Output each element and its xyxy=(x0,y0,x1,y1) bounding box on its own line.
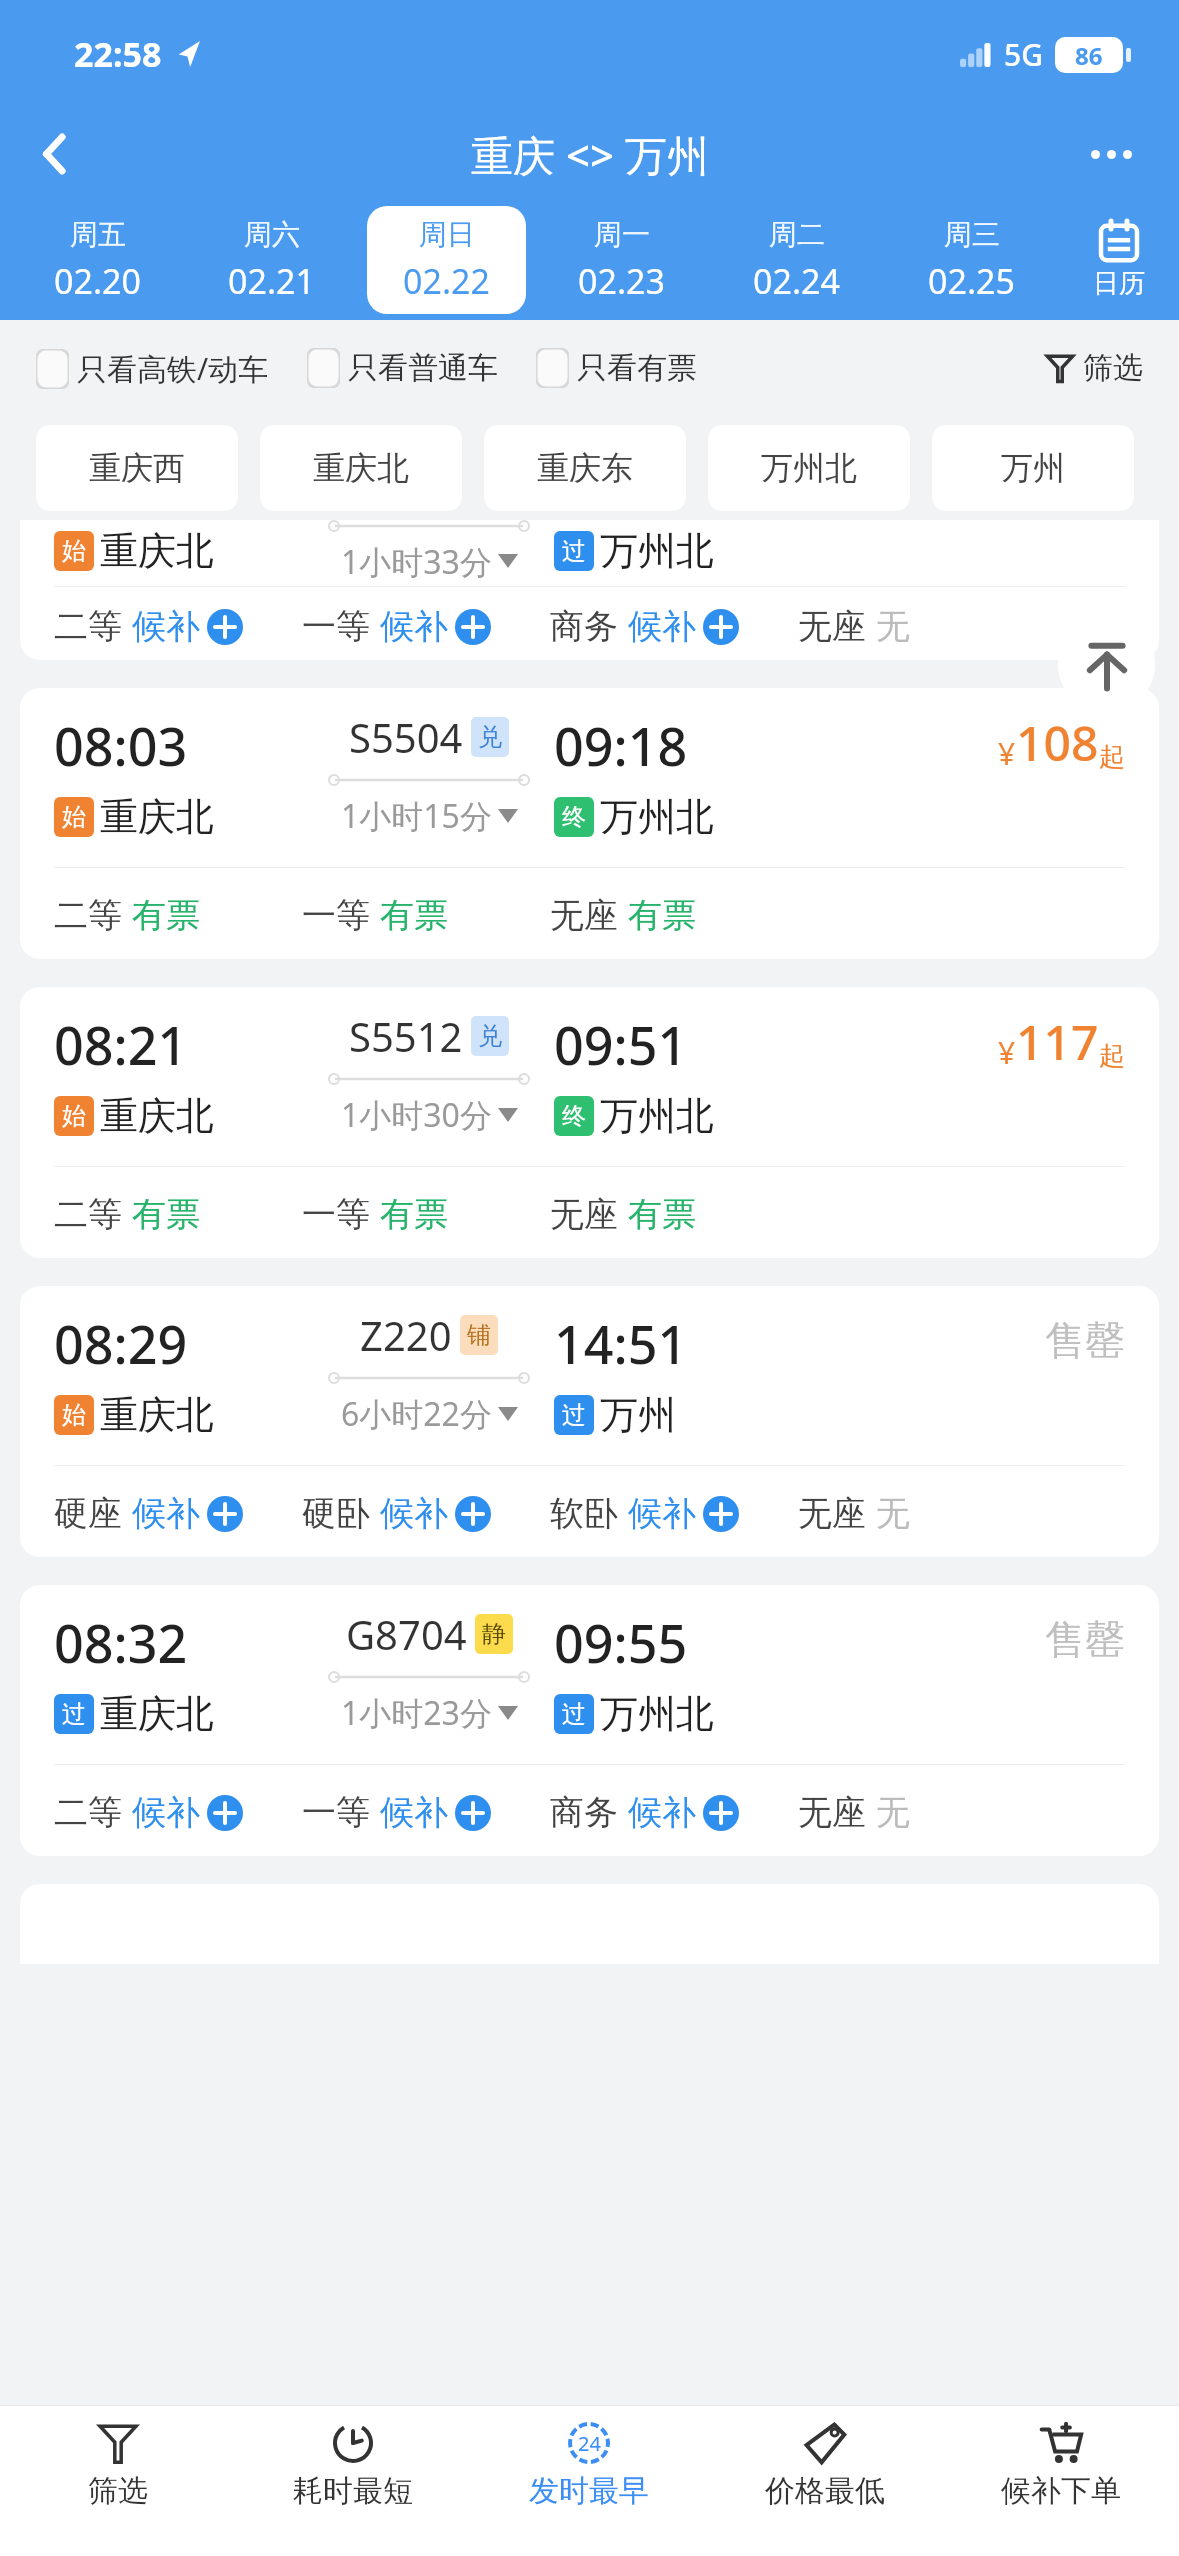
button[interactable]: 商务 xyxy=(550,1791,798,1834)
button[interactable]: 硬座 xyxy=(54,1492,302,1535)
staticText: 一等 xyxy=(302,894,370,937)
button[interactable]: 日历 xyxy=(1059,200,1179,320)
button[interactable]: 08:32 xyxy=(20,1585,1159,1856)
staticText: 重庆北 xyxy=(100,527,214,575)
button[interactable]: 软卧 xyxy=(550,1492,798,1535)
staticText: 无 xyxy=(876,1791,910,1834)
staticText: 只看有票 xyxy=(577,349,697,387)
staticText: 24 xyxy=(578,2430,601,2457)
staticText: 过 xyxy=(562,1400,586,1430)
staticText: 始 xyxy=(62,802,86,832)
staticText: 候补 xyxy=(628,1791,696,1834)
staticText: 无座 xyxy=(550,894,618,937)
staticText: 重庆东 xyxy=(537,448,633,488)
button[interactable]: 一等 xyxy=(302,605,550,648)
button[interactable]: 无座 xyxy=(798,1492,1046,1535)
staticText: 过 xyxy=(62,1699,86,1729)
button[interactable]: 周六 xyxy=(192,206,351,314)
staticText: 09:18 xyxy=(554,710,688,781)
staticText: 5G xyxy=(1004,34,1043,75)
button[interactable]: 始 xyxy=(20,520,1159,660)
staticText: 无座 xyxy=(550,1193,618,1236)
button[interactable]: 08:03 xyxy=(20,688,1159,959)
staticText: 过 xyxy=(562,1699,586,1729)
button[interactable]: 无座 xyxy=(550,1193,798,1236)
button[interactable]: 耗时最短 xyxy=(235,2406,471,2556)
button[interactable]: 08:29 xyxy=(20,1286,1159,1557)
button[interactable]: 价格最低 xyxy=(707,2406,943,2556)
staticText: 万州北 xyxy=(600,1690,714,1738)
staticText: 硬卧 xyxy=(302,1492,370,1535)
button[interactable]: 周五 xyxy=(18,206,176,314)
staticText: 万州 xyxy=(1001,448,1065,488)
button[interactable]: Back to top xyxy=(1058,616,1155,713)
staticText: 重庆北 xyxy=(313,448,409,488)
staticText: 周三 xyxy=(944,217,1000,252)
button[interactable]: 周三 xyxy=(892,206,1051,314)
staticText: 只看普通车 xyxy=(348,349,498,387)
staticText: 22:58 xyxy=(74,31,162,77)
staticText: 09:55 xyxy=(554,1607,688,1678)
staticText: 无座 xyxy=(798,605,866,648)
staticText: 6小时22分 xyxy=(341,1392,492,1436)
button[interactable]: 万州 xyxy=(932,425,1134,511)
staticText: 二等 xyxy=(54,1193,122,1236)
staticText: 万州 xyxy=(600,1391,676,1439)
button[interactable]: 无座 xyxy=(798,1791,1046,1834)
button[interactable]: 重庆北 xyxy=(260,425,462,511)
staticText: 周一 xyxy=(594,217,650,252)
staticText: 始 xyxy=(62,536,86,566)
staticText: 一等 xyxy=(302,1791,370,1834)
staticText: 价格最低 xyxy=(765,2472,885,2510)
button[interactable]: 周一 xyxy=(542,206,701,314)
staticText: 1小时30分 xyxy=(341,1093,492,1137)
button[interactable]: 24 xyxy=(471,2406,707,2556)
button[interactable]: 只看有票 xyxy=(536,342,697,394)
button[interactable]: 一等 xyxy=(302,894,550,937)
staticText: 无 xyxy=(876,1492,910,1535)
button[interactable]: 二等 xyxy=(54,1791,302,1834)
button[interactable]: More options xyxy=(1075,118,1147,190)
staticText: 08:03 xyxy=(54,710,188,781)
button[interactable]: 商务 xyxy=(550,605,798,648)
staticText: 14:51 xyxy=(554,1308,688,1379)
button[interactable]: 二等 xyxy=(54,894,302,937)
staticText: 始 xyxy=(62,1101,86,1131)
staticText: 过 xyxy=(562,536,586,566)
staticText: 候补 xyxy=(132,1492,200,1535)
button[interactable]: 重庆西 xyxy=(36,425,238,511)
staticText: 有票 xyxy=(628,894,696,937)
button[interactable]: 周二 xyxy=(717,206,876,314)
button[interactable]: 周日 xyxy=(367,206,526,314)
button[interactable]: Back xyxy=(20,118,92,190)
button[interactable]: 二等 xyxy=(54,605,302,648)
staticText: 日历 xyxy=(1093,267,1145,300)
staticText: 候补 xyxy=(380,1791,448,1834)
button[interactable]: 二等 xyxy=(54,1193,302,1236)
button[interactable]: 只看高铁/动车 xyxy=(36,342,269,395)
button[interactable]: 08:21 xyxy=(20,987,1159,1258)
button[interactable]: 筛选 xyxy=(0,2406,235,2556)
staticText: 商务 xyxy=(550,605,618,648)
staticText: S5512 xyxy=(349,1009,463,1063)
button[interactable]: 无座 xyxy=(798,605,1046,648)
staticText: 86 xyxy=(1075,39,1103,72)
button[interactable]: 万州北 xyxy=(708,425,910,511)
staticText: 硬座 xyxy=(54,1492,122,1535)
staticText: 兑 xyxy=(478,1021,502,1051)
button[interactable]: 硬卧 xyxy=(302,1492,550,1535)
staticText: 周六 xyxy=(244,217,300,252)
button[interactable]: 一等 xyxy=(302,1791,550,1834)
staticText: 筛选 xyxy=(88,2472,148,2510)
button[interactable]: 无座 xyxy=(550,894,798,937)
staticText: G8704 xyxy=(346,1607,467,1661)
staticText: 有票 xyxy=(380,1193,448,1236)
button[interactable]: 候补下单 xyxy=(943,2406,1179,2556)
button[interactable]: 一等 xyxy=(302,1193,550,1236)
button[interactable]: 重庆东 xyxy=(484,425,686,511)
staticText: 02.22 xyxy=(403,258,490,304)
button[interactable]: 只看普通车 xyxy=(307,342,498,394)
button[interactable]: 筛选 xyxy=(1040,343,1149,393)
staticText: 重庆北 xyxy=(100,793,214,841)
